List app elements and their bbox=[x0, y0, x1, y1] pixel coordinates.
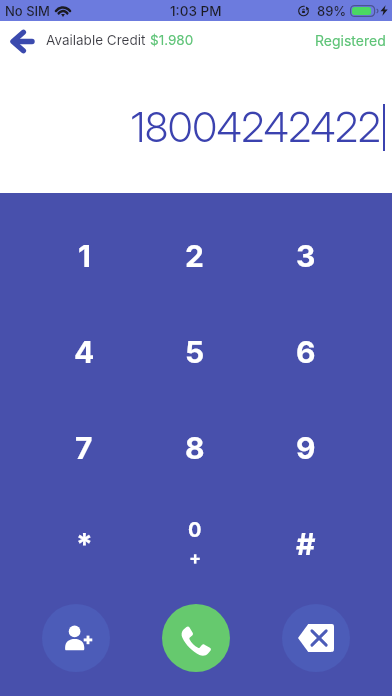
staticText: Available Credit bbox=[46, 32, 150, 48]
button[interactable]: 7 bbox=[29, 400, 139, 496]
staticText: 7 bbox=[75, 430, 93, 466]
button[interactable]: # bbox=[250, 496, 361, 592]
staticText: 2 bbox=[185, 238, 204, 274]
staticText: * bbox=[76, 526, 93, 562]
staticText: 1 bbox=[78, 238, 91, 274]
button[interactable]: 3 bbox=[250, 208, 361, 304]
button[interactable]: 8 bbox=[139, 400, 250, 496]
staticText: 6 bbox=[296, 334, 316, 370]
staticText: 4 bbox=[74, 334, 95, 370]
button[interactable]: 0 bbox=[139, 496, 250, 592]
button[interactable]: Call bbox=[162, 604, 230, 672]
staticText: # bbox=[296, 526, 316, 562]
button[interactable]: * bbox=[29, 496, 139, 592]
staticText: 8 bbox=[185, 430, 205, 466]
button[interactable]: 2 bbox=[139, 208, 250, 304]
staticText: 5 bbox=[185, 334, 205, 370]
staticText: 3 bbox=[296, 238, 316, 274]
staticText: 89% bbox=[317, 3, 347, 19]
staticText: No SIM bbox=[5, 3, 50, 19]
button[interactable]: 6 bbox=[250, 304, 361, 400]
staticText: Registered bbox=[315, 32, 386, 49]
button[interactable]: Backspace bbox=[282, 604, 350, 672]
button[interactable]: 4 bbox=[29, 304, 139, 400]
staticText: 18004242422 bbox=[131, 102, 381, 152]
staticText: $1.980 bbox=[150, 32, 194, 48]
staticText: 9 bbox=[296, 430, 316, 466]
button[interactable]: 1 bbox=[29, 208, 139, 304]
button[interactable]: Back bbox=[0, 21, 44, 59]
staticText: 0 bbox=[188, 518, 202, 542]
button[interactable]: 5 bbox=[139, 304, 250, 400]
staticText: + bbox=[189, 547, 202, 569]
button[interactable]: Registered bbox=[315, 32, 392, 49]
button[interactable]: 9 bbox=[250, 400, 361, 496]
staticText: 1:03 PM bbox=[170, 3, 222, 19]
button[interactable]: Add contact bbox=[42, 604, 110, 672]
